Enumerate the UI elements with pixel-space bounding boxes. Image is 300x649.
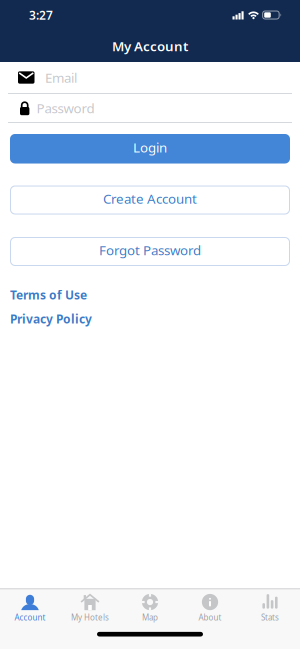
staticText: Terms of Use — [10, 287, 87, 303]
button[interactable]: Login — [10, 134, 290, 163]
staticText: Login — [133, 138, 167, 156]
button[interactable]: Email — [0, 62, 300, 93]
staticText: About — [198, 612, 221, 623]
staticText: My Account — [112, 37, 188, 55]
button[interactable]: My Hotels — [60, 594, 120, 625]
staticText: Password — [36, 99, 94, 117]
staticText: Email — [45, 69, 77, 86]
button[interactable]: Create Account — [10, 185, 290, 214]
staticText: My Hotels — [71, 612, 109, 623]
button[interactable]: Password — [0, 94, 300, 122]
staticText: Account — [14, 612, 45, 623]
button[interactable]: Privacy Policy — [10, 311, 92, 327]
button[interactable]: Stats — [240, 594, 300, 625]
staticText: 3:27 — [29, 7, 53, 23]
staticText: Create Account — [103, 190, 197, 207]
button[interactable]: About — [180, 594, 240, 625]
button[interactable]: Account — [0, 594, 60, 625]
staticText: Stats — [261, 612, 279, 623]
staticText: Forgot Password — [99, 241, 201, 259]
staticText: Map — [142, 612, 158, 623]
button[interactable]: Forgot Password — [10, 237, 290, 266]
staticText: Privacy Policy — [10, 311, 92, 327]
button[interactable]: Terms of Use — [10, 287, 87, 303]
button[interactable]: Map — [120, 594, 180, 625]
